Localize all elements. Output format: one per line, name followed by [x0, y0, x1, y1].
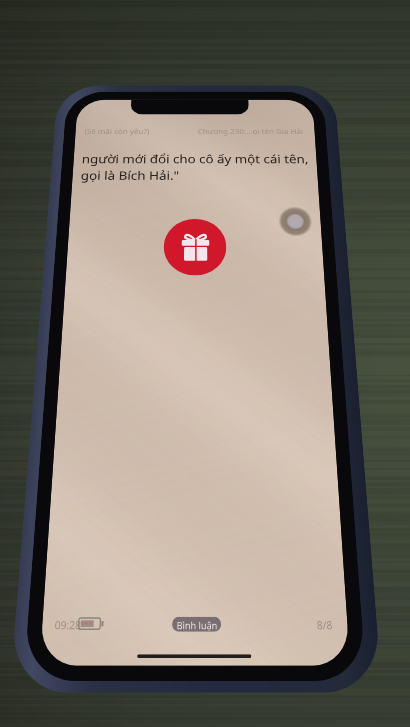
- staticText: người mới đổi cho cô ấy một cái tên,: [81, 151, 309, 166]
- staticText: 09:28: [54, 617, 82, 632]
- staticText: Chương 230:...ọi tên Gia Hải: [198, 126, 304, 135]
- staticText: 8/8: [316, 617, 333, 632]
- staticText: Bình luận: [177, 618, 218, 632]
- button[interactable]: Settings: [278, 206, 313, 236]
- button[interactable]: Gift: [163, 219, 227, 275]
- button[interactable]: Bình luận: [172, 617, 221, 632]
- staticText: gọi là Bích Hải.": [80, 167, 180, 183]
- staticText: (Sẽ mãi còn yêu?): [84, 126, 150, 135]
